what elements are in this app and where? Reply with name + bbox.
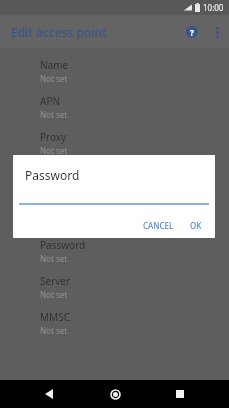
staticText: Not set (40, 325, 68, 336)
button[interactable]: Home (98, 380, 132, 408)
staticText: Username (40, 202, 89, 216)
button[interactable]: Port (0, 163, 229, 199)
staticText: Server (40, 274, 71, 288)
staticText: CANCEL (143, 220, 174, 231)
button[interactable]: Name (0, 55, 229, 91)
staticText: Proxy (40, 130, 67, 144)
button[interactable]: MMSC (0, 307, 229, 343)
button[interactable]: More options (205, 20, 229, 44)
button[interactable]: CANCEL (138, 217, 179, 234)
staticText: MMSC (40, 310, 70, 324)
button[interactable]: Password (0, 235, 229, 271)
staticText: Password (40, 238, 86, 252)
staticText: Not set (40, 289, 68, 300)
staticText: ? (190, 27, 194, 38)
staticText: Password (25, 167, 80, 183)
staticText: Name (40, 58, 69, 72)
button[interactable]: Recent apps (163, 380, 197, 408)
staticText: APN (40, 94, 61, 108)
button[interactable]: Username (0, 199, 229, 235)
staticText: Port (40, 166, 60, 180)
staticText: Not set (40, 73, 68, 84)
button[interactable]: APN (0, 91, 229, 127)
button[interactable]: Server (0, 271, 229, 307)
staticText: Not set (40, 145, 68, 156)
staticText: OK (190, 220, 202, 231)
button[interactable]: Back (32, 380, 66, 408)
staticText: 10:00 (203, 2, 224, 13)
button[interactable]: OK (185, 217, 207, 234)
button[interactable]: Proxy (0, 127, 229, 163)
staticText: Not set (40, 253, 68, 264)
staticText: Edit access point (11, 24, 107, 40)
staticText: Not set (40, 109, 68, 120)
button[interactable]: Help (179, 19, 205, 45)
